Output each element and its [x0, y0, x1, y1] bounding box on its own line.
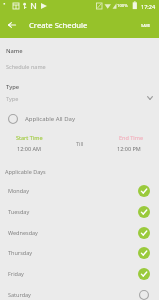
staticText: Start Time	[16, 134, 43, 141]
staticText: 12:00 AM	[17, 145, 41, 152]
button[interactable]: Back	[4, 17, 20, 33]
staticText: Wednesday	[8, 229, 38, 236]
button[interactable]: Applicable All Day	[0, 111, 159, 127]
staticText: 17:24	[141, 3, 156, 10]
staticText: Type	[6, 83, 20, 91]
staticText: Type	[6, 95, 19, 102]
staticText: Thursday	[8, 249, 33, 256]
staticText: Applicable Days	[5, 168, 46, 175]
staticText: Tuesday	[8, 208, 30, 215]
button[interactable]: Tuesday	[0, 201, 159, 222]
staticText: Schedule name	[6, 63, 46, 70]
button[interactable]: Saturday	[0, 284, 159, 300]
button[interactable]: Select type	[143, 91, 156, 104]
button[interactable]: Thursday	[0, 242, 159, 263]
staticText: Applicable All Day	[25, 115, 76, 123]
button[interactable]: Monday	[0, 180, 159, 201]
staticText: Monday	[8, 187, 29, 194]
button[interactable]: SAVE	[139, 21, 153, 30]
staticText: Saturday	[8, 291, 31, 298]
button[interactable]: Wednesday	[0, 222, 159, 243]
staticText: Name	[6, 47, 23, 55]
staticText: Create Schedule	[29, 20, 88, 30]
staticText: 100%	[117, 3, 128, 9]
staticText: 12:00 PM	[117, 145, 141, 152]
staticText: End Time	[119, 134, 143, 141]
staticText: Friday	[8, 270, 24, 277]
staticText: SAVE	[141, 23, 151, 28]
staticText: Till	[76, 140, 84, 147]
button[interactable]: Friday	[0, 263, 159, 284]
